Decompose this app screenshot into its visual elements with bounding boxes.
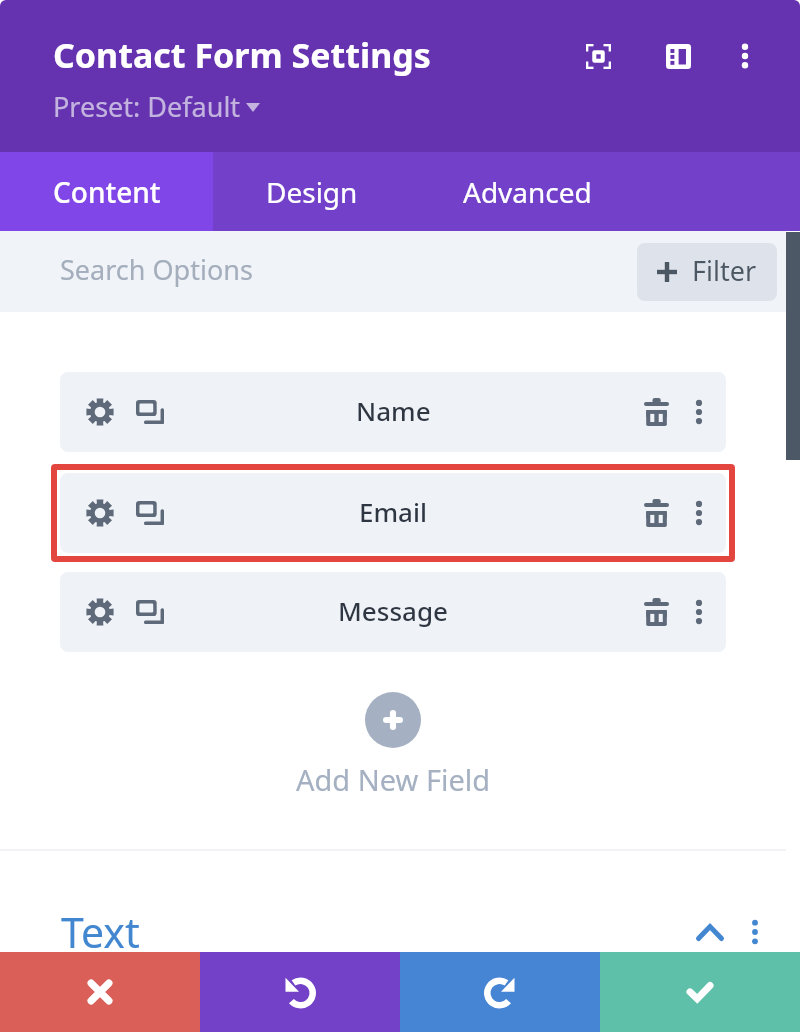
button[interactable]: Duplicate (133, 496, 167, 530)
button[interactable]: More (682, 496, 716, 530)
button[interactable]: Undo (200, 952, 400, 1032)
staticText: Add New Field (296, 760, 491, 799)
button[interactable]: Center focus (575, 33, 621, 79)
button[interactable]: Settings (83, 496, 117, 530)
staticText: Contact Form Settings (53, 32, 431, 78)
button[interactable]: Delete (639, 496, 673, 530)
button[interactable]: Cancel (0, 952, 200, 1032)
staticText: Name (356, 393, 431, 428)
staticText: Search Options (60, 251, 253, 288)
button[interactable]: Filter (637, 243, 777, 301)
button[interactable]: More (682, 595, 716, 629)
button[interactable]: Duplicate (133, 395, 167, 429)
button[interactable]: Options (733, 910, 777, 954)
button[interactable]: Settings (83, 395, 117, 429)
staticText: Text (61, 904, 140, 960)
button[interactable]: Save (600, 952, 800, 1032)
staticText: Filter (692, 252, 757, 289)
button[interactable]: Layout (655, 33, 701, 79)
button[interactable]: Add New Field (0, 692, 786, 799)
staticText: Design (266, 173, 358, 211)
button[interactable]: Settings (83, 595, 117, 629)
staticText: Email (359, 494, 428, 529)
button[interactable]: More (682, 395, 716, 429)
staticText: Message (338, 593, 448, 628)
button[interactable]: Duplicate (133, 595, 167, 629)
button[interactable]: Redo (400, 952, 600, 1032)
button[interactable]: Content (0, 152, 213, 231)
button[interactable]: Collapse (688, 910, 732, 954)
staticText: Content (53, 173, 161, 211)
button[interactable]: Design (213, 152, 410, 231)
staticText: Preset: Default (53, 88, 241, 125)
staticText: Advanced (463, 173, 592, 211)
button[interactable]: Settings (60, 372, 726, 452)
button[interactable]: Delete (639, 595, 673, 629)
button[interactable]: Settings (60, 572, 726, 652)
button[interactable]: Settings (60, 473, 726, 553)
button[interactable]: Delete (639, 395, 673, 429)
button[interactable]: Advanced (410, 152, 645, 231)
button[interactable]: More options (722, 33, 768, 79)
